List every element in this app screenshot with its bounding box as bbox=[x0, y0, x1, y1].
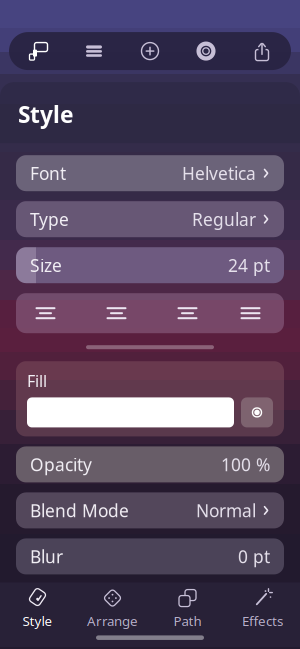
staticText: Arrange bbox=[87, 612, 138, 630]
button[interactable]: Align left bbox=[16, 293, 83, 333]
staticText: Fill bbox=[27, 370, 47, 391]
button[interactable]: Blur bbox=[16, 538, 284, 574]
staticText: Opacity bbox=[30, 453, 92, 476]
staticText: 24 pt bbox=[228, 254, 270, 277]
staticText: 0 pt bbox=[238, 545, 270, 568]
button[interactable]: Justify bbox=[217, 293, 284, 333]
button[interactable]: Blend Mode bbox=[16, 492, 284, 528]
button[interactable]: Settings bbox=[178, 32, 234, 70]
button[interactable]: Paint tool bbox=[10, 32, 66, 70]
staticText: Type bbox=[30, 208, 69, 231]
button[interactable]: Type bbox=[16, 201, 284, 237]
button[interactable]: Layers bbox=[66, 32, 122, 70]
button[interactable]: Arrange bbox=[75, 586, 150, 630]
staticText: Path bbox=[173, 612, 201, 630]
staticText: Font bbox=[30, 162, 66, 185]
button[interactable]: Effects bbox=[225, 586, 300, 630]
button[interactable]: Opacity bbox=[16, 446, 284, 482]
staticText: Helvetica bbox=[182, 162, 256, 185]
button[interactable]: Style bbox=[0, 586, 75, 630]
button[interactable]: Path bbox=[150, 586, 225, 630]
staticText: Normal bbox=[196, 499, 256, 522]
staticText: Style bbox=[18, 99, 74, 129]
staticText: Regular bbox=[192, 208, 256, 231]
staticText: Blur bbox=[30, 545, 63, 568]
button[interactable]: Share bbox=[234, 32, 290, 70]
button[interactable]: Toggle fill visibility bbox=[241, 397, 273, 427]
staticText: 100 % bbox=[221, 453, 270, 476]
button[interactable]: Font bbox=[16, 155, 284, 191]
button[interactable]: Align center bbox=[83, 293, 150, 333]
button[interactable]: Add bbox=[122, 32, 178, 70]
button[interactable]: Size bbox=[16, 247, 284, 283]
staticText: Size bbox=[30, 254, 62, 277]
button[interactable]: Fill colour bbox=[27, 397, 234, 427]
button[interactable]: Align right bbox=[150, 293, 217, 333]
staticText: Blend Mode bbox=[30, 499, 129, 522]
staticText: Style bbox=[22, 612, 52, 630]
staticText: Effects bbox=[242, 612, 283, 630]
